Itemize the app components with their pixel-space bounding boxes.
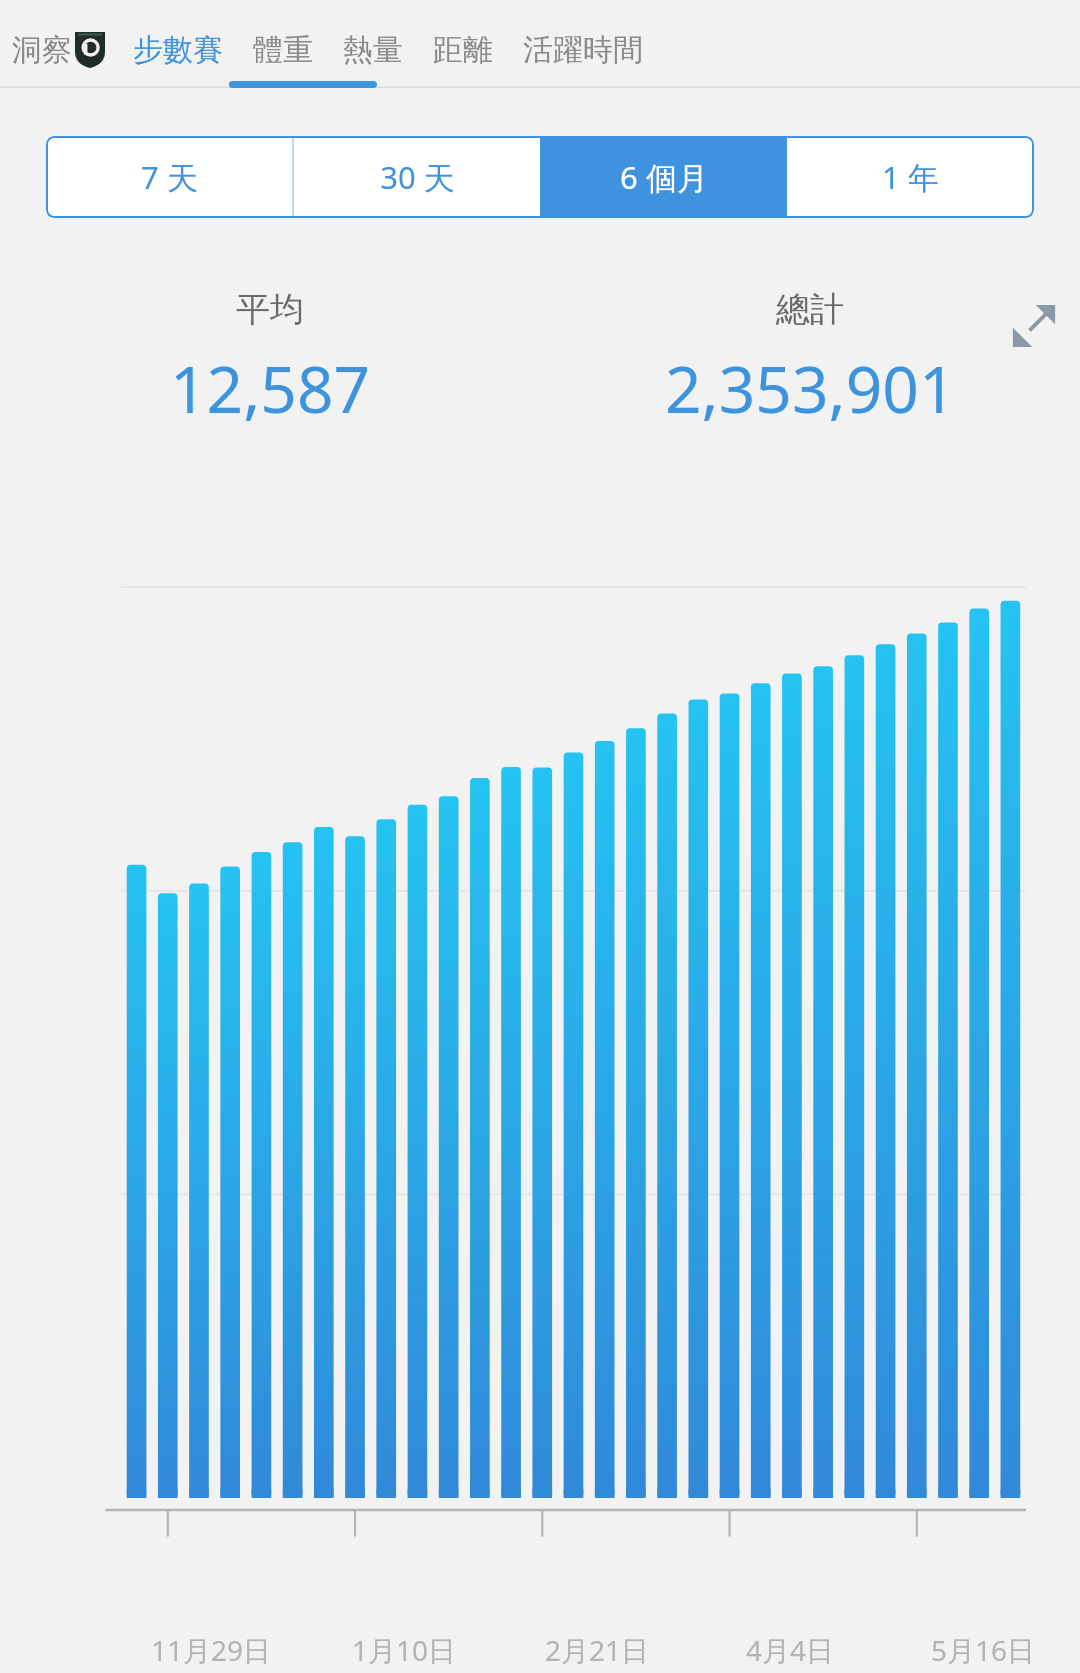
staticText: 熱量 [343,31,403,69]
staticText: 2月21日 [545,1631,650,1669]
staticText: 平均 [236,288,304,331]
staticText: 30 天 [380,156,455,198]
staticText: 距離 [433,31,493,69]
staticText: 7 天 [141,156,198,198]
button[interactable]: 距離 [425,25,501,75]
button[interactable]: 熱量 [335,25,411,75]
staticText: 11月29日 [151,1631,272,1669]
button[interactable]: 洞察 [0,25,111,75]
staticText: 2,353,901 [665,345,956,432]
other: Insights badge [75,32,105,68]
button[interactable]: 6 個月 [540,136,787,218]
button[interactable]: 7 天 [46,136,292,218]
button[interactable]: 1 年 [787,136,1034,218]
button[interactable]: 步數賽 [125,25,231,75]
button[interactable]: 30 天 [294,136,540,218]
staticText: 12,587 [170,345,371,432]
staticText: 洞察 [12,31,72,69]
button[interactable]: 體重 [245,25,321,75]
button[interactable]: 活躍時間 [515,25,651,75]
button[interactable]: Expand chart [1008,300,1060,352]
staticText: 1 年 [882,156,939,198]
staticText: 6 個月 [620,156,708,198]
staticText: 活躍時間 [523,31,643,69]
staticText: 5月16日 [931,1631,1036,1669]
staticText: 總計 [776,288,844,331]
staticText: 4月4日 [746,1631,835,1669]
staticText: 1月10日 [352,1631,457,1669]
staticText: 體重 [253,31,313,69]
staticText: 步數賽 [133,31,223,69]
